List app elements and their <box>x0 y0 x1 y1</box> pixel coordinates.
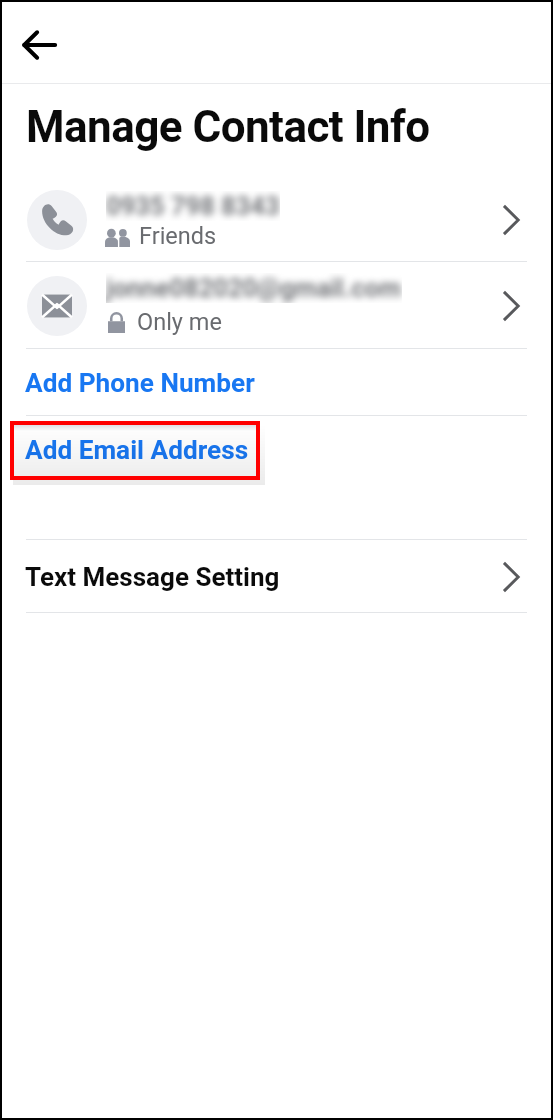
button[interactable]: Phone number, Friends <box>2 178 551 262</box>
staticText: jonne082020@gmail.com <box>106 273 402 303</box>
button[interactable]: Text Message Setting <box>2 540 551 613</box>
staticText: Only me <box>137 308 222 336</box>
button[interactable]: Add Phone Number <box>2 351 551 416</box>
button[interactable]: Back <box>7 13 71 77</box>
button[interactable]: Add Email Address <box>2 418 551 483</box>
staticText: 0935 798 8343 <box>106 191 280 221</box>
staticText: Add Phone Number <box>25 368 255 399</box>
staticText: Text Message Setting <box>25 562 280 592</box>
staticText: Manage Contact Info <box>26 101 430 153</box>
staticText: Friends <box>139 222 217 250</box>
staticText: Add Email Address <box>25 435 249 466</box>
button[interactable]: Email address, Only me <box>2 264 551 348</box>
